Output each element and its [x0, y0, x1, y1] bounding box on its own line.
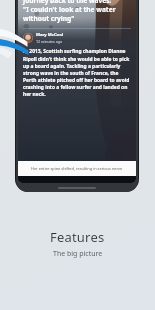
staticText: Mary McCool [36, 32, 64, 38]
staticText: Journey back to the waves: "I couldn't l… [23, 0, 116, 23]
staticText: Her entire spine shifted, resulting in s… [31, 166, 123, 171]
staticText: 12 minutes ago [36, 39, 63, 44]
staticText: The big picture [53, 249, 103, 259]
staticText: In 2013, Scottish surfing champion Diann… [23, 48, 131, 97]
button[interactable]: Mary McCool [23, 32, 64, 44]
staticText: Features [50, 228, 105, 246]
